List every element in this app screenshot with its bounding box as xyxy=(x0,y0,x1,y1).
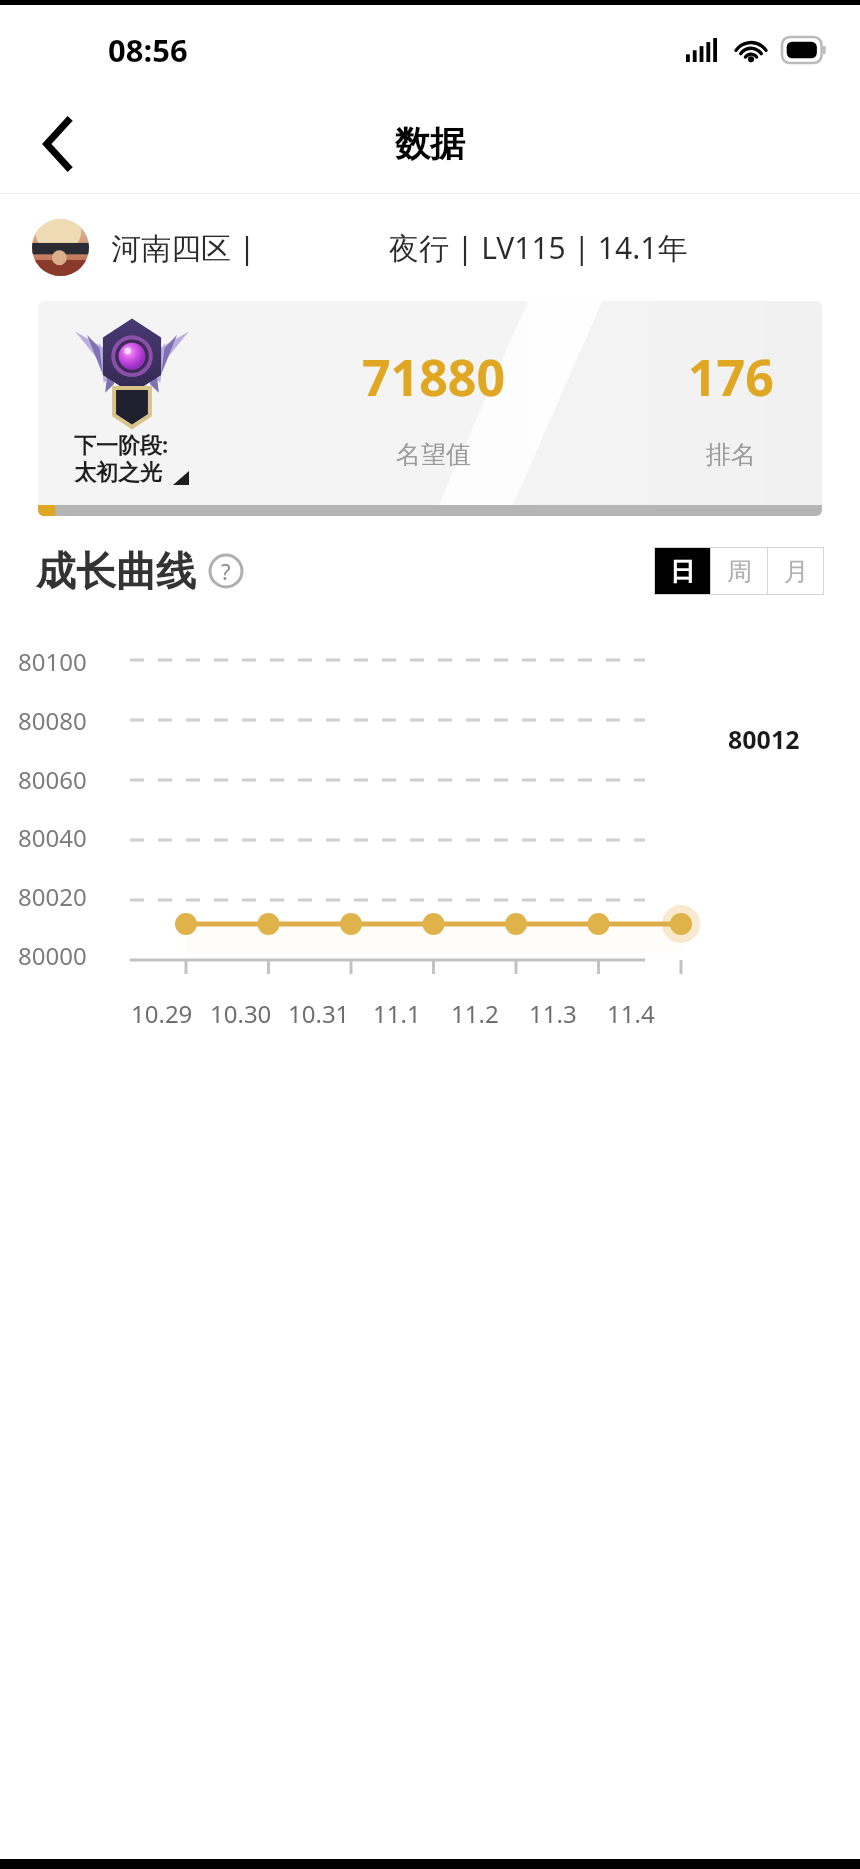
staticText: 10.31 xyxy=(288,997,350,1030)
button[interactable]: 下一阶段: xyxy=(38,301,822,516)
staticText: 日 xyxy=(670,556,695,587)
button[interactable]: 周 xyxy=(711,547,767,595)
button[interactable]: 河南四区 | xyxy=(0,194,860,301)
staticText: 11.4 xyxy=(607,997,655,1030)
staticText: 80000 xyxy=(18,939,87,972)
staticText: 周 xyxy=(727,556,752,587)
staticText: 11.2 xyxy=(451,997,499,1030)
staticText: 夜行 | LV115 | 14.1年 xyxy=(389,227,688,268)
staticText: 80020 xyxy=(18,880,87,913)
staticText: 80080 xyxy=(18,704,87,737)
staticText: ? xyxy=(221,556,231,586)
button[interactable]: Back xyxy=(22,108,94,180)
staticText: 下一阶段: xyxy=(74,429,169,459)
staticText: 10.29 xyxy=(131,997,193,1030)
staticText: 名望值 xyxy=(396,439,471,470)
button[interactable]: 月 xyxy=(768,547,824,595)
staticText: 71880 xyxy=(362,343,505,411)
staticText: 80060 xyxy=(18,763,87,796)
staticText: 数据 xyxy=(395,122,465,166)
staticText: 河南四区 | xyxy=(111,227,256,268)
staticText: 08:56 xyxy=(108,29,188,71)
staticText: 80040 xyxy=(18,821,87,854)
staticText: 80100 xyxy=(18,645,87,678)
staticText: 11.3 xyxy=(529,997,577,1030)
staticText: 成长曲线 xyxy=(36,546,196,596)
staticText: 月 xyxy=(784,556,809,587)
staticText: 176 xyxy=(688,343,774,411)
staticText: 80012 xyxy=(728,722,800,756)
button[interactable]: Help xyxy=(208,553,244,589)
staticText: 10.30 xyxy=(210,997,272,1030)
staticText: 11.1 xyxy=(373,997,421,1030)
staticText: 太初之光 xyxy=(74,459,162,487)
button[interactable]: 日 xyxy=(654,547,710,595)
staticText: 排名 xyxy=(706,439,756,470)
